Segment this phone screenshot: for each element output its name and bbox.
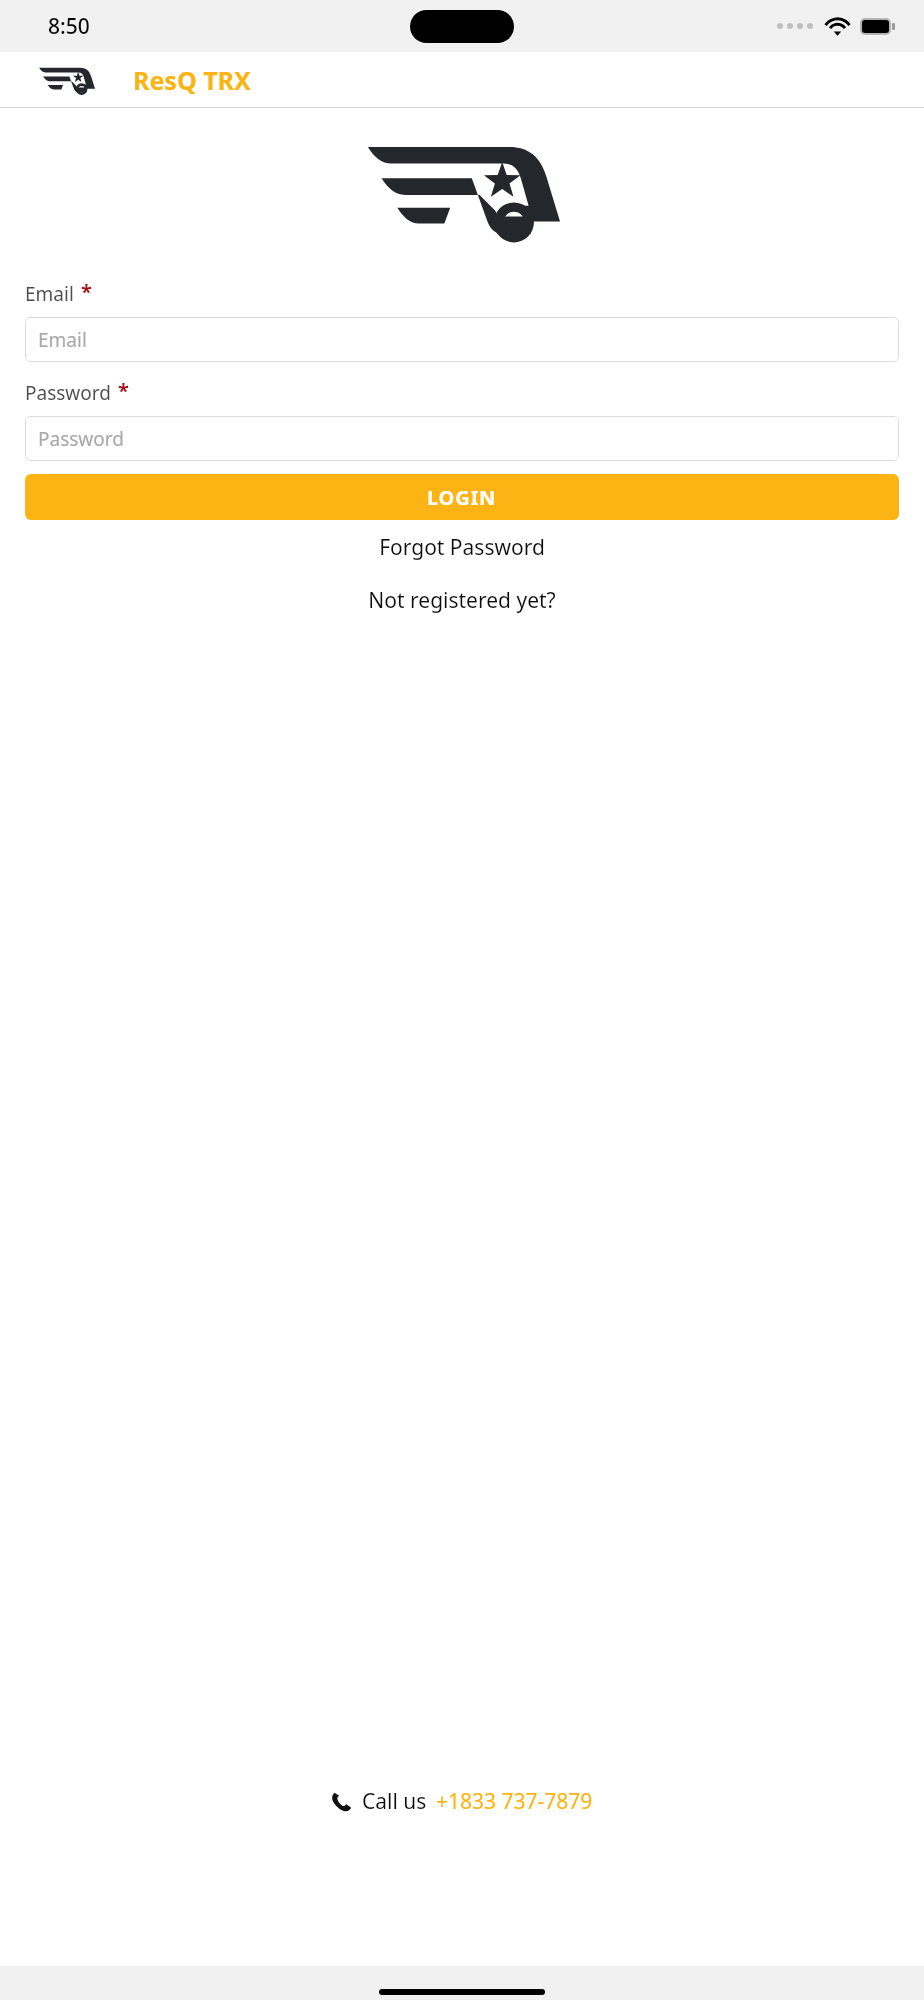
- staticText: *: [81, 278, 92, 305]
- staticText: +1833 737-7879: [436, 1787, 593, 1816]
- staticText: Forgot Password: [379, 533, 545, 562]
- button[interactable]: LOGIN: [25, 474, 899, 520]
- button[interactable]: Forgot Password: [25, 533, 899, 562]
- other: ResQ TRX: [364, 141, 560, 243]
- staticText: Not registered yet?: [368, 586, 556, 615]
- button[interactable]: Call us: [0, 1787, 924, 1816]
- button[interactable]: Not registered yet?: [25, 586, 899, 615]
- staticText: Email: [38, 327, 87, 353]
- button[interactable]: Email: [25, 317, 899, 362]
- staticText: Password: [25, 380, 111, 406]
- button[interactable]: Password: [25, 416, 899, 461]
- staticText: Call us: [362, 1787, 427, 1816]
- staticText: ResQ TRX: [133, 63, 251, 97]
- staticText: LOGIN: [427, 484, 497, 511]
- staticText: 8:50: [48, 12, 90, 41]
- staticText: Password: [38, 426, 124, 452]
- staticText: Email: [25, 281, 74, 307]
- staticText: *: [118, 377, 129, 404]
- other: ResQ TRX logo: [38, 66, 95, 95]
